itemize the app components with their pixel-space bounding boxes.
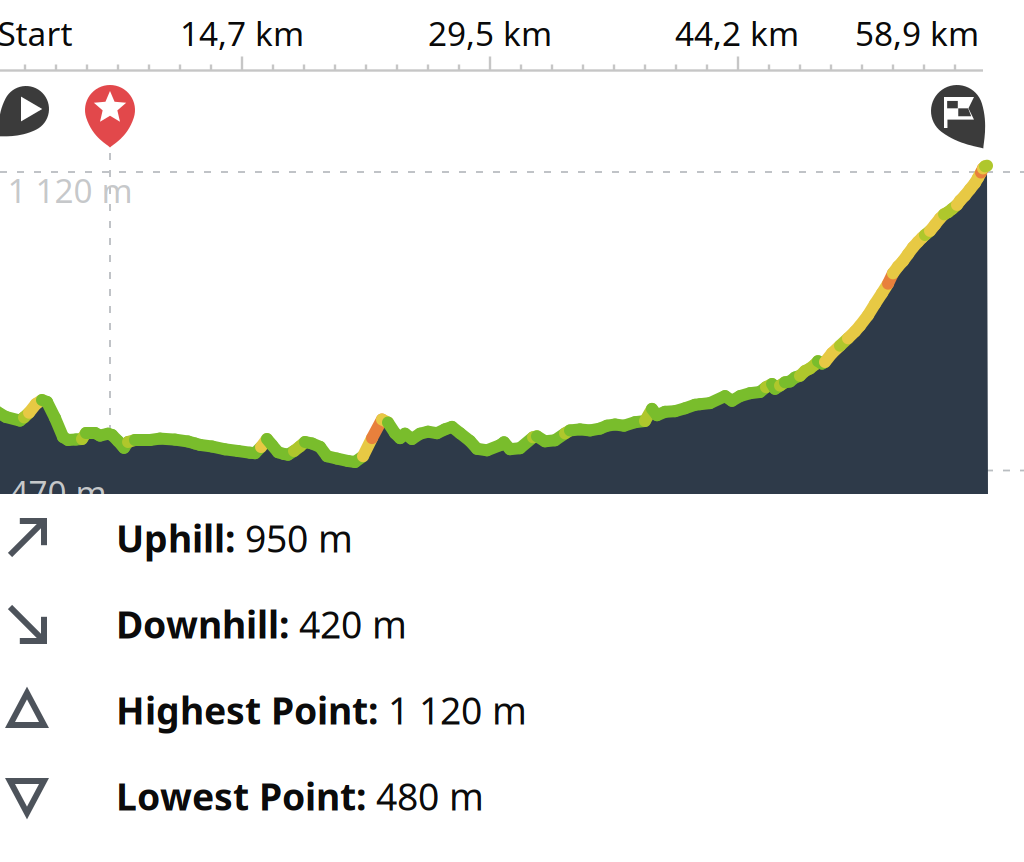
staticText: 29,5 km xyxy=(428,11,552,55)
staticText: Start xyxy=(0,11,72,55)
staticText: 420 m xyxy=(289,599,407,649)
staticText: 14,7 km xyxy=(180,11,304,55)
staticText: Highest Point: xyxy=(116,685,378,735)
staticText: 470 m xyxy=(9,470,106,514)
staticText: Uphill: xyxy=(116,513,235,563)
staticText: 1 120 m xyxy=(7,168,132,212)
button[interactable]: Lowest Point: xyxy=(0,753,1024,839)
staticText: 480 m xyxy=(366,771,484,821)
button[interactable]: Highest Point: xyxy=(0,667,1024,753)
staticText: Downhill: xyxy=(116,599,289,649)
staticText: Lowest Point: xyxy=(116,771,366,821)
staticText: 950 m xyxy=(235,513,353,563)
staticText: 44,2 km xyxy=(675,11,799,55)
button[interactable]: Uphill: xyxy=(0,495,1024,581)
staticText: 1 120 m xyxy=(378,685,527,735)
button[interactable]: Downhill: xyxy=(0,581,1024,667)
staticText: 58,9 km xyxy=(855,11,979,55)
